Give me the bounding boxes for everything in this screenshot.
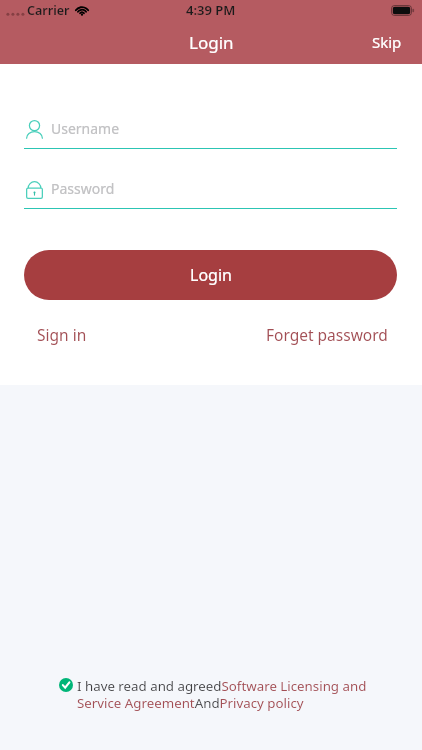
- button[interactable]: Skip: [350, 20, 422, 64]
- button[interactable]: Agree to terms: [59, 678, 73, 692]
- staticText: Forget password: [266, 324, 388, 345]
- button[interactable]: Sign in: [37, 322, 87, 347]
- staticText: Login: [189, 31, 234, 54]
- staticText: 4:39 PM: [186, 1, 236, 19]
- staticText: Username: [51, 119, 120, 138]
- staticText: Login: [190, 264, 232, 286]
- staticText: Skip: [372, 32, 402, 52]
- button[interactable]: Login: [24, 250, 397, 300]
- staticText: I have read and agreedSoftware Licensing…: [77, 677, 370, 712]
- staticText: Password: [51, 179, 115, 198]
- button[interactable]: Forget password: [266, 322, 388, 347]
- button[interactable]: Password: [24, 175, 397, 210]
- staticText: Carrier: [27, 2, 70, 19]
- button[interactable]: Username: [24, 115, 397, 150]
- staticText: Sign in: [37, 324, 87, 345]
